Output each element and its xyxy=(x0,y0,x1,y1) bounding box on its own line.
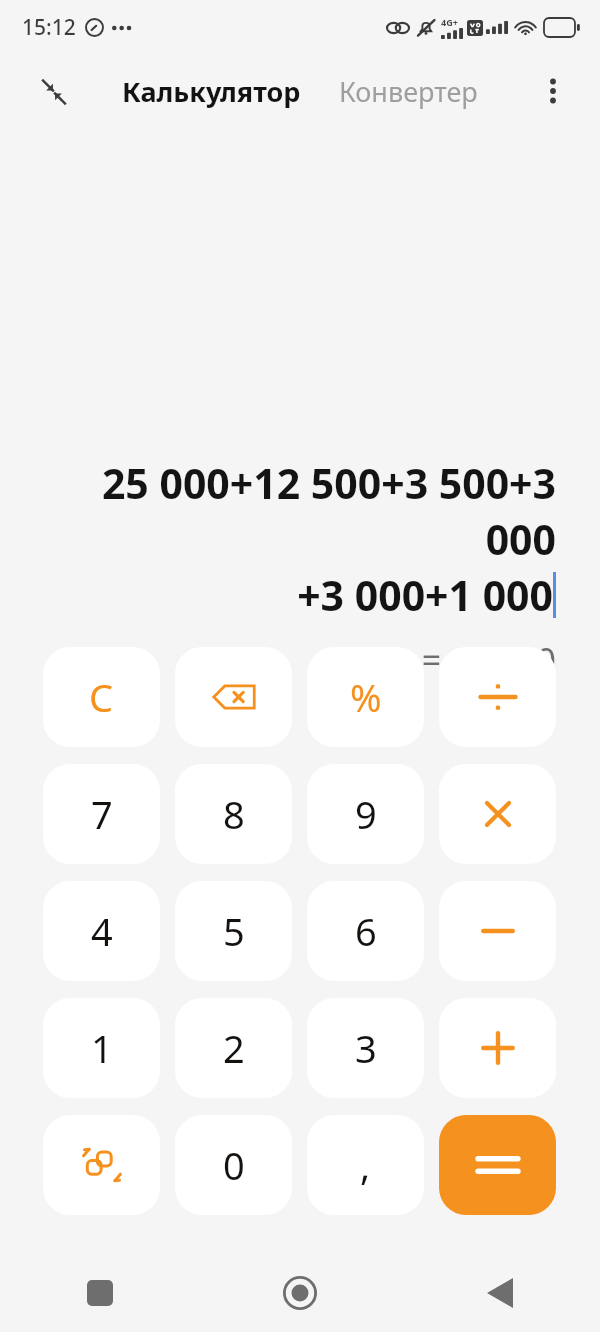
staticText: 15:12 xyxy=(22,13,76,42)
button[interactable]: 1 xyxy=(43,998,160,1098)
staticText: 1 xyxy=(91,1022,113,1074)
button[interactable]: 4 xyxy=(43,881,160,981)
button[interactable]: Recents xyxy=(0,1254,200,1332)
button[interactable]: Конвертер xyxy=(335,67,482,116)
button[interactable]: Scientific mode xyxy=(43,1115,160,1215)
button[interactable]: Multiply xyxy=(439,764,556,864)
button[interactable]: Калькулятор xyxy=(118,67,305,116)
button[interactable]: C xyxy=(43,647,160,747)
button[interactable]: Plus xyxy=(439,998,556,1098)
button[interactable]: Backspace xyxy=(175,647,292,747)
staticText: 4 xyxy=(91,905,113,957)
button[interactable]: Divide xyxy=(439,647,556,747)
staticText: % xyxy=(350,671,382,723)
button[interactable]: 9 xyxy=(307,764,424,864)
staticText: 6 xyxy=(355,905,377,957)
button[interactable]: 8 xyxy=(175,764,292,864)
button[interactable] xyxy=(439,1115,556,1215)
button[interactable]: , xyxy=(307,1115,424,1215)
staticText: 8 xyxy=(223,788,245,840)
staticText: 7 xyxy=(91,788,113,840)
button[interactable]: 5 xyxy=(175,881,292,981)
staticText: , xyxy=(360,1139,371,1191)
button[interactable]: % xyxy=(307,647,424,747)
staticText: 9 xyxy=(355,788,377,840)
button[interactable]: Back xyxy=(400,1254,600,1332)
button[interactable]: 2 xyxy=(175,998,292,1098)
button[interactable]: Minus xyxy=(439,881,556,981)
button[interactable]: Collapse xyxy=(34,72,74,112)
staticText: 25 000+12 500+3 500+3 000 xyxy=(44,455,556,567)
staticText: 2 xyxy=(223,1022,245,1074)
staticText: Калькулятор xyxy=(122,73,301,110)
staticText: 0 xyxy=(223,1139,245,1191)
staticText: +3 000+1 000 xyxy=(297,567,553,623)
staticText: 3 xyxy=(355,1022,377,1074)
staticText: = 48 000 xyxy=(421,637,556,683)
button[interactable]: More options xyxy=(532,70,574,112)
button[interactable]: Home xyxy=(200,1254,400,1332)
button[interactable]: 6 xyxy=(307,881,424,981)
staticText: 4G+ xyxy=(441,16,458,28)
staticText: C xyxy=(89,671,114,723)
button[interactable]: 0 xyxy=(175,1115,292,1215)
button[interactable]: 3 xyxy=(307,998,424,1098)
staticText: Конвертер xyxy=(339,73,478,110)
button[interactable]: 7 xyxy=(43,764,160,864)
staticText: 5 xyxy=(223,905,245,957)
